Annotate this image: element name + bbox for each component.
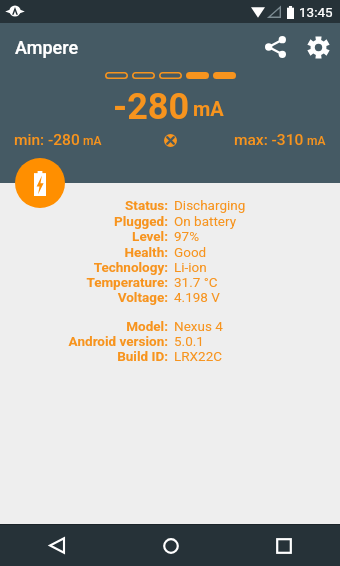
staticText: mA [83,134,102,148]
staticText: mA [307,134,326,148]
staticText: Level: [0,228,168,244]
staticText: min: -280 [14,131,80,149]
button[interactable]: Share [254,23,296,71]
staticText: 5.0.1 [174,333,204,349]
button[interactable]: Recent apps [227,525,340,566]
button[interactable]: Start measuring [15,158,65,208]
staticText: LRX22C [174,348,223,364]
staticText: 4.198 V [174,289,220,305]
staticText: 97% [174,228,200,244]
staticText: Li-ion [174,259,207,275]
staticText: Temperature: [0,274,168,290]
staticText: Plugged: [0,213,168,229]
staticText: Ampere [15,37,79,58]
staticText: On battery [174,213,237,229]
staticText: 31.7 °C [174,274,218,290]
staticText: mA [193,97,224,120]
staticText: Status: [0,197,168,213]
staticText: Voltage: [0,289,168,305]
staticText: Android version: [0,333,168,349]
staticText: Health: [0,244,168,260]
staticText: Discharging [174,197,246,213]
button[interactable]: Back [0,525,114,566]
staticText: Good [174,244,207,260]
staticText: -280 [113,86,190,128]
staticText: Technology: [0,259,168,275]
button[interactable]: Home [114,525,227,566]
staticText: max: -310 [234,131,304,149]
staticText: Nexus 4 [174,318,223,334]
staticText: 13:45 [299,4,333,20]
staticText: Model: [0,318,168,334]
button[interactable]: Settings [296,23,340,71]
staticText: Build ID: [0,348,168,364]
button[interactable]: Reset minimum and maximum [158,130,182,150]
